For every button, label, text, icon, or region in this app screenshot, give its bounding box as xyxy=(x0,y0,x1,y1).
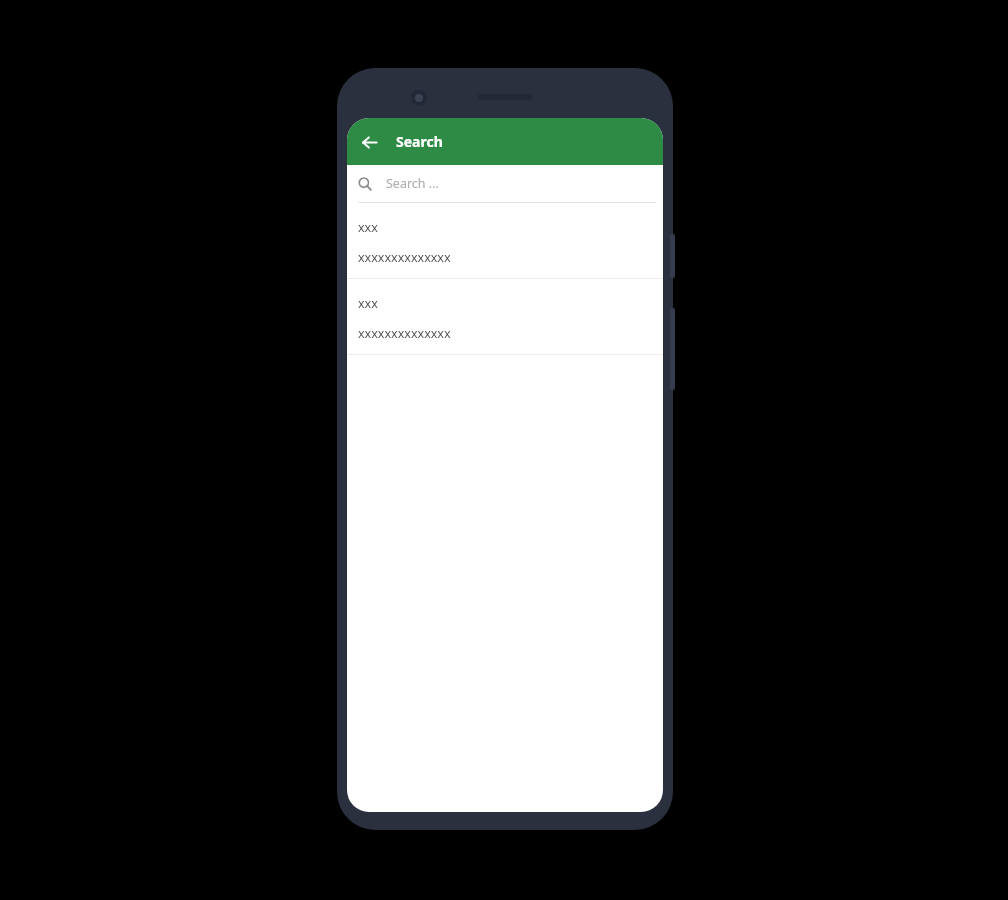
staticText: xxxxxxxxxxxxxx xyxy=(358,325,451,342)
button[interactable]: xxx xyxy=(347,203,663,279)
button[interactable]: Search ... xyxy=(347,165,663,202)
staticText: xxxxxxxxxxxxxx xyxy=(358,249,451,266)
button[interactable]: xxx xyxy=(347,279,663,355)
staticText: xxx xyxy=(358,219,378,236)
staticText: xxx xyxy=(358,295,378,312)
staticText: Search xyxy=(396,132,443,151)
staticText: Search ... xyxy=(386,175,439,192)
button[interactable]: Back xyxy=(354,127,384,157)
